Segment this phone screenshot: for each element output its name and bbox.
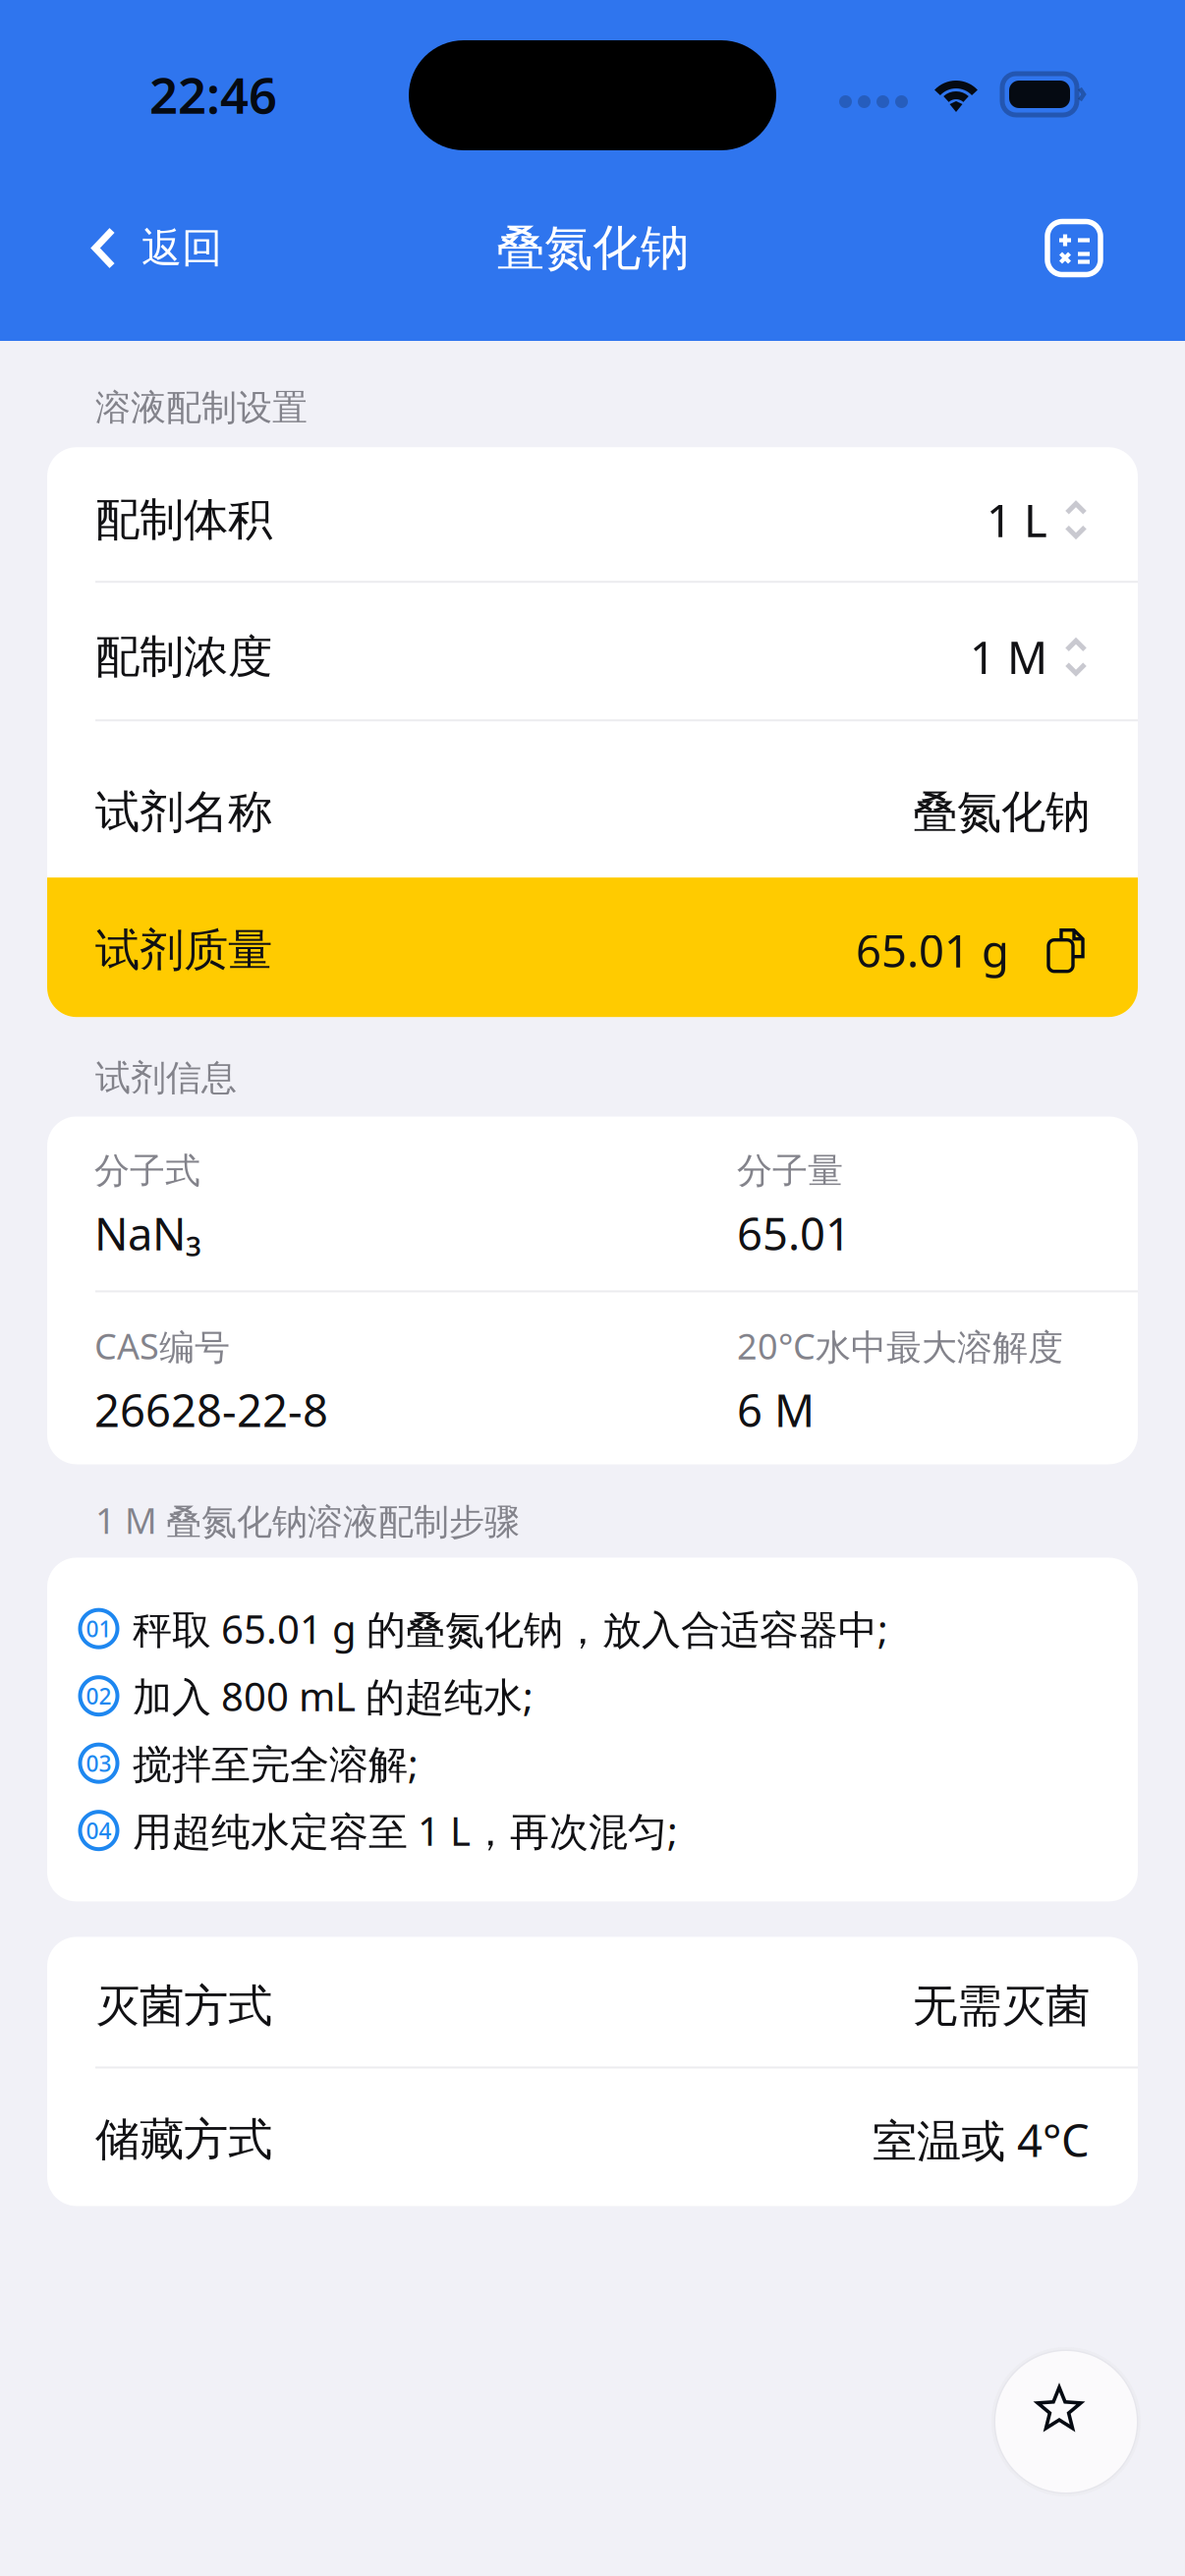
staticText: 秤取 65.01 g 的叠氮化钠，放入合适容器中;	[133, 1602, 888, 1655]
staticText: 搅拌至完全溶解;	[133, 1737, 419, 1789]
staticText: 室温或 4°C	[873, 2110, 1090, 2169]
staticText: 03	[86, 1748, 112, 1778]
staticText: 65.01 g	[856, 921, 1009, 980]
staticText: 储藏方式	[95, 2112, 272, 2167]
button[interactable]: Calculator	[1019, 209, 1185, 307]
staticText: 配制浓度	[95, 630, 272, 684]
staticText: 6 M	[737, 1380, 815, 1439]
staticText: 1 M 叠氮化钠溶液配制步骤	[95, 1497, 520, 1544]
button[interactable]: 配制浓度	[47, 583, 1138, 719]
button[interactable]: 配制体积	[47, 447, 1138, 581]
staticText: 1 M	[970, 627, 1047, 687]
button[interactable]: Add to favorites	[995, 2351, 1137, 2492]
staticText: 分子式	[94, 1149, 200, 1193]
staticText: 01	[86, 1614, 112, 1643]
staticText: 20°C水中最大溶解度	[737, 1322, 1063, 1369]
staticText: 无需灭菌	[913, 1979, 1090, 2033]
staticText: 溶液配制设置	[95, 386, 308, 430]
staticText: 1 L	[987, 490, 1047, 549]
button[interactable]: 试剂质量	[47, 878, 1138, 1017]
staticText: 配制体积	[95, 493, 272, 547]
staticText: 叠氮化钠	[913, 785, 1090, 840]
staticText: 返回	[141, 223, 222, 273]
staticText: 02	[86, 1681, 112, 1711]
staticText: 用超纯水定容至 1 L，再次混匀;	[133, 1804, 678, 1857]
staticText: 加入 800 mL 的超纯水;	[133, 1670, 534, 1722]
staticText: 26628-22-8	[94, 1380, 328, 1439]
staticText: 试剂名称	[95, 785, 272, 840]
staticText: CAS编号	[94, 1322, 230, 1369]
staticText: 叠氮化钠	[496, 218, 689, 278]
staticText: 分子量	[737, 1149, 843, 1193]
button[interactable]: 返回	[0, 209, 250, 306]
staticText: NaN₃	[94, 1203, 201, 1263]
staticText: 65.01	[737, 1203, 851, 1263]
staticText: 试剂质量	[95, 923, 272, 978]
staticText: 04	[86, 1816, 112, 1845]
staticText: 试剂信息	[95, 1056, 237, 1100]
staticText: 22:46	[149, 61, 277, 127]
staticText: 灭菌方式	[95, 1979, 272, 2033]
